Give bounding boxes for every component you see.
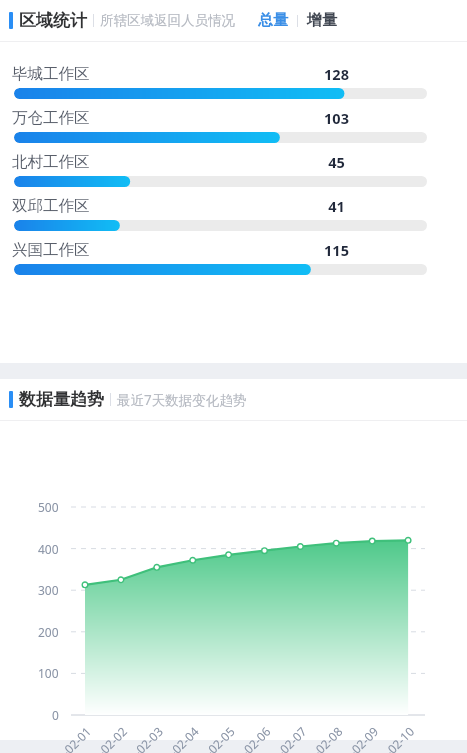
staticText: 区域统计 xyxy=(19,10,87,31)
button[interactable]: 双邱工作区 xyxy=(0,194,467,231)
staticText: 兴国工作区 xyxy=(12,240,90,260)
staticText: 毕城工作区 xyxy=(12,64,90,84)
staticText: 所辖区域返回人员情况 xyxy=(100,12,235,29)
button[interactable]: 万仓工作区 xyxy=(0,106,467,143)
staticText: 103 xyxy=(324,108,349,128)
button[interactable]: 北村工作区 xyxy=(0,150,467,187)
staticText: 41 xyxy=(328,196,345,216)
staticText: 115 xyxy=(324,240,349,260)
button[interactable]: 增量 xyxy=(303,5,341,36)
staticText: 最近7天数据变化趋势 xyxy=(117,391,247,409)
staticText: 45 xyxy=(328,152,345,172)
staticText: 总量 xyxy=(258,11,288,30)
staticText: 128 xyxy=(324,64,349,84)
button[interactable]: 总量 xyxy=(254,5,292,36)
staticText: 万仓工作区 xyxy=(12,108,90,128)
button[interactable]: 毕城工作区 xyxy=(0,62,467,99)
staticText: 增量 xyxy=(307,11,337,30)
staticText: 数据量趋势 xyxy=(19,389,104,410)
staticText: 双邱工作区 xyxy=(12,196,90,216)
staticText: 北村工作区 xyxy=(12,152,90,172)
button[interactable]: 兴国工作区 xyxy=(0,238,467,275)
